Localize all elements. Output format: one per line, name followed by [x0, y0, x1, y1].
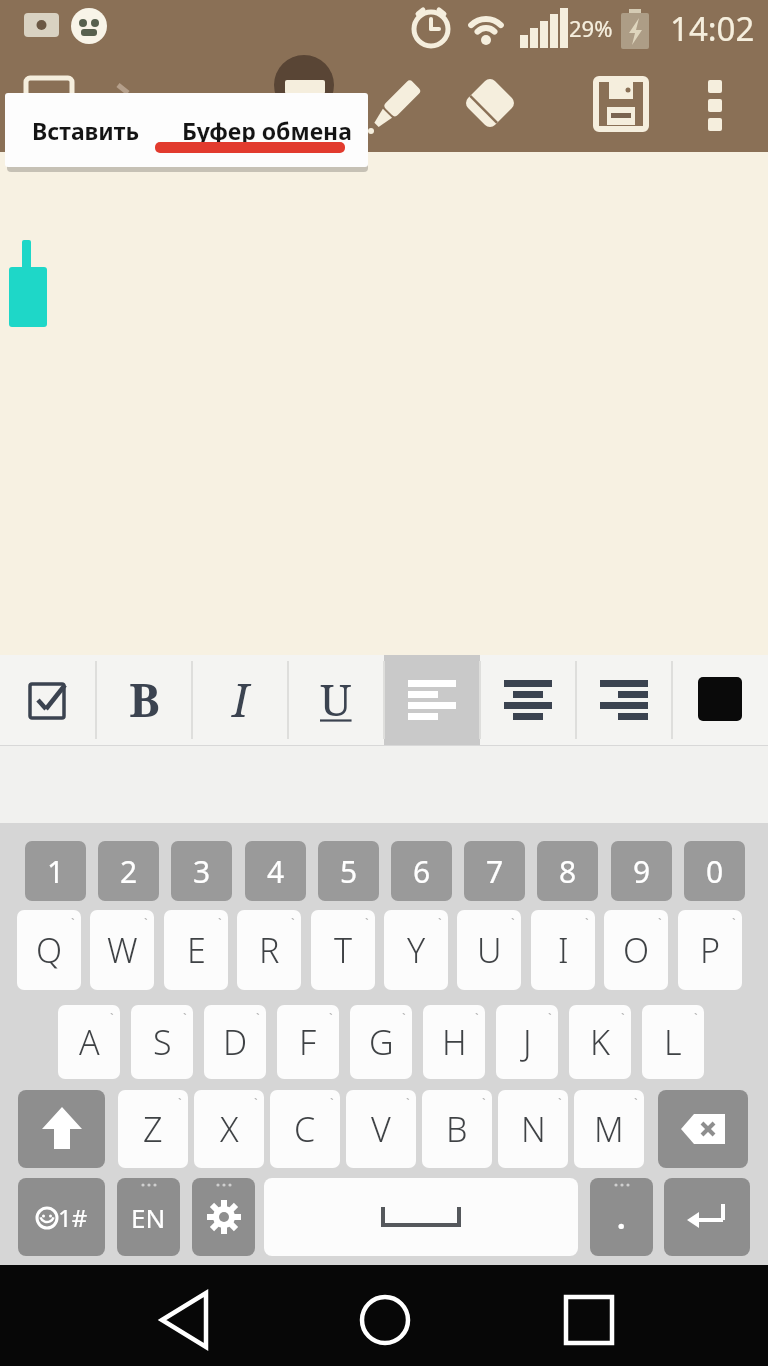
- button[interactable]: [192, 655, 288, 745]
- button[interactable]: 0: [684, 841, 745, 901]
- staticText: H: [442, 1019, 467, 1065]
- staticText: S: [153, 1019, 172, 1065]
- button[interactable]: 3: [171, 841, 232, 901]
- button[interactable]: [664, 1178, 750, 1256]
- button[interactable]: 5: [318, 841, 379, 901]
- button[interactable]: 8: [537, 841, 598, 901]
- button[interactable]: B: [422, 1090, 492, 1168]
- button[interactable]: G: [350, 1005, 412, 1079]
- button[interactable]: [0, 655, 96, 745]
- button[interactable]: F: [277, 1005, 339, 1079]
- staticText: `: [254, 1094, 258, 1112]
- staticText: U: [477, 927, 502, 973]
- staticText: `: [634, 1094, 638, 1112]
- button[interactable]: N: [498, 1090, 568, 1168]
- staticText: U: [320, 669, 352, 729]
- staticText: W: [107, 927, 138, 973]
- button[interactable]: 7: [464, 841, 525, 901]
- button[interactable]: [0, 1265, 256, 1366]
- button[interactable]: 6: [391, 841, 452, 901]
- button[interactable]: V: [346, 1090, 416, 1168]
- button[interactable]: W: [90, 910, 154, 990]
- button[interactable]: P: [678, 910, 742, 990]
- staticText: `: [694, 1009, 698, 1027]
- button[interactable]: E: [164, 910, 228, 990]
- button[interactable]: [288, 655, 384, 745]
- staticText: `: [402, 1009, 406, 1027]
- button[interactable]: 1#: [18, 1178, 105, 1256]
- button[interactable]: Вставить: [5, 93, 166, 167]
- button[interactable]: M: [574, 1090, 644, 1168]
- button[interactable]: 4: [245, 841, 306, 901]
- staticText: D: [223, 1019, 248, 1065]
- button[interactable]: U: [457, 910, 521, 990]
- staticText: K: [590, 1019, 610, 1065]
- staticText: Z: [143, 1106, 163, 1152]
- staticText: T: [334, 927, 353, 973]
- button[interactable]: [192, 1178, 255, 1256]
- button[interactable]: [672, 655, 768, 745]
- staticText: `: [585, 914, 589, 932]
- staticText: `: [406, 1094, 410, 1112]
- button[interactable]: J: [496, 1005, 558, 1079]
- button[interactable]: C: [270, 1090, 340, 1168]
- staticText: .: [617, 1197, 626, 1238]
- button[interactable]: .: [590, 1178, 653, 1256]
- staticText: 1: [47, 851, 65, 892]
- staticText: `: [658, 914, 662, 932]
- button[interactable]: [512, 1265, 768, 1366]
- button[interactable]: [658, 1090, 748, 1168]
- button[interactable]: [256, 1265, 512, 1366]
- button[interactable]: [96, 655, 192, 745]
- staticText: I: [558, 927, 569, 973]
- staticText: `: [183, 1009, 187, 1027]
- staticText: G: [369, 1019, 394, 1065]
- staticText: Y: [407, 927, 426, 973]
- button[interactable]: [576, 655, 672, 745]
- staticText: P: [700, 927, 721, 973]
- staticText: O: [623, 927, 650, 973]
- staticText: `: [178, 1094, 182, 1112]
- staticText: 7: [486, 851, 504, 892]
- button[interactable]: Z: [118, 1090, 188, 1168]
- button[interactable]: S: [131, 1005, 193, 1079]
- button[interactable]: 9: [611, 841, 672, 901]
- staticText: 5: [340, 851, 358, 892]
- button[interactable]: EN: [117, 1178, 180, 1256]
- button[interactable]: 2: [98, 841, 159, 901]
- button[interactable]: [18, 1090, 105, 1168]
- button[interactable]: Q: [17, 910, 81, 990]
- staticText: EN: [131, 1200, 166, 1235]
- button[interactable]: K: [569, 1005, 631, 1079]
- staticText: 0: [706, 851, 724, 892]
- staticText: M: [594, 1106, 624, 1152]
- button[interactable]: Y: [384, 910, 448, 990]
- staticText: F: [299, 1019, 317, 1065]
- staticText: `: [110, 1009, 114, 1027]
- staticText: 3: [193, 851, 211, 892]
- staticText: Вставить: [32, 115, 140, 146]
- staticText: X: [220, 1106, 239, 1152]
- staticText: 9: [633, 851, 651, 892]
- staticText: Q: [36, 927, 63, 973]
- button[interactable]: D: [204, 1005, 266, 1079]
- staticText: R: [259, 927, 280, 973]
- button[interactable]: L: [642, 1005, 704, 1079]
- staticText: B: [446, 1106, 468, 1152]
- staticText: `: [291, 914, 295, 932]
- button[interactable]: I: [531, 910, 595, 990]
- button[interactable]: [384, 655, 480, 745]
- button[interactable]: X: [194, 1090, 264, 1168]
- button[interactable]: Буфер обмена: [166, 93, 368, 167]
- button[interactable]: H: [423, 1005, 485, 1079]
- staticText: `: [365, 914, 369, 932]
- button[interactable]: R: [237, 910, 301, 990]
- button[interactable]: 1: [25, 841, 86, 901]
- button[interactable]: [480, 655, 576, 745]
- button[interactable]: A: [58, 1005, 120, 1079]
- button[interactable]: O: [604, 910, 668, 990]
- staticText: Буфер обмена: [182, 115, 352, 146]
- button[interactable]: [264, 1178, 578, 1256]
- staticText: 4: [267, 851, 285, 892]
- button[interactable]: T: [311, 910, 375, 990]
